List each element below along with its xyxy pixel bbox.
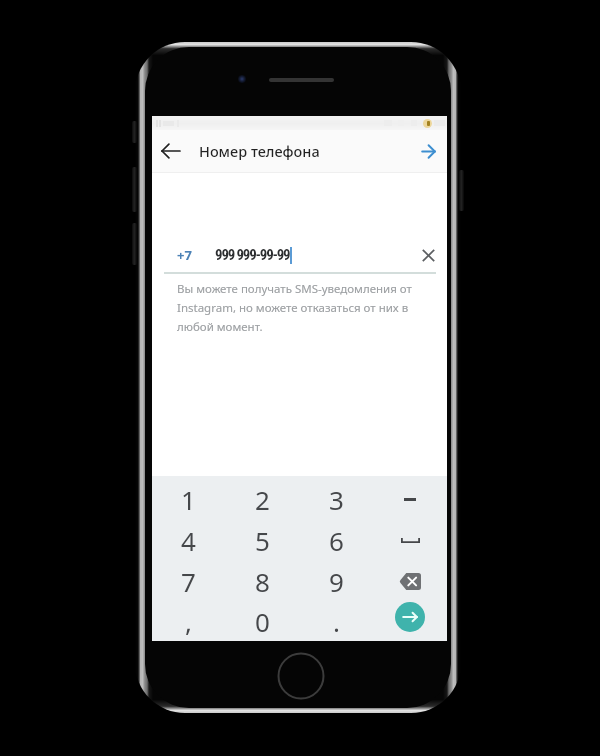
staticText: 2 [255, 482, 270, 517]
button[interactable]: 7 [152, 561, 225, 602]
button[interactable]: 8 [225, 561, 299, 602]
button[interactable]: , [152, 602, 225, 641]
button[interactable]: 6 [299, 520, 373, 561]
button[interactable]: Next [413, 136, 443, 166]
staticText: 4 [181, 523, 196, 558]
staticText: Номер телефона [199, 141, 320, 161]
button[interactable]: Space [373, 520, 447, 561]
button[interactable]: 2 [225, 479, 299, 520]
staticText: 3 [329, 482, 344, 517]
staticText: +7 [177, 246, 192, 264]
button[interactable]: Enter [373, 602, 447, 641]
staticText: Instagram, но можете отказаться от них в [177, 300, 409, 316]
staticText: 9 [329, 564, 344, 599]
button[interactable]: . [299, 602, 373, 641]
staticText: Вы можете получать SMS-уведомления от [177, 281, 412, 297]
staticText: . [333, 604, 340, 639]
button[interactable]: Backspace [373, 561, 447, 602]
button[interactable]: 5 [225, 520, 299, 561]
button[interactable]: 1 [152, 479, 225, 520]
button[interactable]: Back [156, 136, 186, 166]
button[interactable]: 0 [225, 602, 299, 641]
button[interactable]: 9 [299, 561, 373, 602]
staticText: любой момент. [177, 319, 263, 335]
staticText: 1 [181, 482, 196, 517]
staticText: 0 [255, 604, 270, 639]
staticText: 999 999-99-99 [215, 246, 290, 264]
staticText: 5 [255, 523, 270, 558]
staticText: 7 [181, 564, 196, 599]
button[interactable]: Clear [415, 242, 441, 268]
button[interactable]: 4 [152, 520, 225, 561]
button[interactable]: 3 [299, 479, 373, 520]
staticText: 6 [329, 523, 344, 558]
staticText: , [185, 604, 192, 639]
button[interactable]: Dash [373, 479, 447, 520]
staticText: 8 [255, 564, 270, 599]
